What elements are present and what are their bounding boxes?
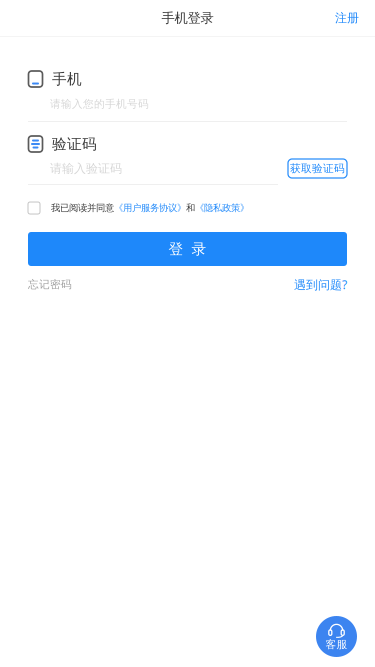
staticText: 我已阅读并同意	[51, 202, 114, 214]
staticText: 请输入验证码	[50, 161, 122, 176]
button[interactable]: 注册	[329, 6, 365, 30]
staticText: 遇到问题?	[294, 276, 347, 292]
button[interactable]: 同意用户服务协议	[28, 202, 40, 214]
staticText: 和	[186, 202, 195, 214]
staticText: 《用户服务协议》	[114, 202, 186, 214]
button[interactable]: 客服	[316, 616, 357, 657]
button[interactable]: 忘记密码	[28, 278, 72, 291]
staticText: 请输入您的手机号码	[50, 97, 149, 110]
button[interactable]: 登 录	[28, 232, 347, 266]
staticText: 忘记密码	[28, 278, 72, 291]
button[interactable]: 遇到问题?	[294, 276, 347, 292]
button[interactable]: 获取验证码	[288, 159, 347, 178]
staticText: 客服	[325, 638, 347, 651]
staticText: 手机登录	[161, 10, 213, 26]
staticText: 验证码	[52, 135, 97, 153]
staticText: 获取验证码	[290, 162, 345, 175]
staticText: 注册	[335, 11, 359, 25]
staticText: 登 录	[168, 240, 206, 258]
staticText: 手机	[52, 70, 82, 88]
staticText: 《隐私政策》	[195, 202, 249, 214]
button[interactable]: 《隐私政策》	[195, 202, 249, 214]
button[interactable]: 《用户服务协议》	[114, 202, 186, 214]
